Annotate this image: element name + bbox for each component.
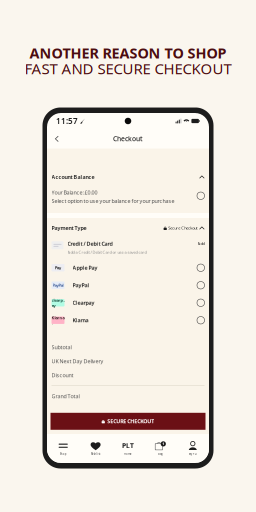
staticText: Subtotal bbox=[51, 344, 71, 351]
staticText: FAST AND SECURE CHECKOUT bbox=[24, 58, 231, 79]
staticText: Account Balance bbox=[51, 173, 94, 181]
staticText: 11:57 bbox=[56, 116, 78, 126]
staticText: PayPal bbox=[52, 283, 63, 288]
staticText: Wishlist bbox=[91, 452, 101, 456]
staticText: Bag bbox=[158, 452, 163, 456]
staticText: Select option to use your balance for yo… bbox=[51, 197, 174, 205]
staticText: Klarna bbox=[72, 317, 88, 324]
staticText: Checkout bbox=[113, 134, 143, 143]
button[interactable]: Pay bbox=[51, 259, 204, 276]
button[interactable]: 1 bbox=[144, 436, 177, 460]
staticText: clearpay bbox=[51, 297, 64, 308]
staticText: UK Next Day Delivery bbox=[51, 358, 103, 365]
button[interactable]: clearpay bbox=[51, 294, 204, 311]
staticText: Grand Total bbox=[51, 393, 79, 400]
staticText: Discount bbox=[51, 372, 73, 379]
staticText: Home bbox=[124, 452, 132, 456]
staticText: Add bbox=[197, 241, 204, 246]
button[interactable]: Klarna. bbox=[51, 311, 204, 329]
staticText: My PLT bbox=[189, 452, 197, 456]
button[interactable]: PayPal bbox=[51, 276, 204, 294]
button[interactable]: Shop bbox=[47, 436, 79, 460]
button[interactable]: SECURE CHECKOUT bbox=[50, 413, 205, 430]
staticText: Add a Credit / Debit Card or use a saved… bbox=[67, 250, 146, 255]
staticText: Clearpay bbox=[72, 299, 94, 306]
staticText: Pay bbox=[55, 265, 61, 270]
button[interactable]: Wishlist bbox=[79, 436, 112, 460]
staticText: SECURE CHECKOUT bbox=[107, 418, 154, 425]
button[interactable]: My PLT bbox=[177, 436, 209, 460]
button[interactable]: PLT bbox=[112, 436, 144, 460]
staticText: PayPal bbox=[72, 282, 89, 289]
staticText: Your Balance: £0.00 bbox=[51, 189, 97, 196]
staticText: PLT bbox=[122, 441, 134, 450]
staticText: Credit / Debit Card bbox=[67, 240, 112, 247]
button[interactable]: Back bbox=[51, 132, 62, 145]
staticText: 1 bbox=[162, 441, 164, 446]
staticText: ANOTHER REASON TO SHOP bbox=[29, 43, 226, 63]
staticText: Klarna. bbox=[51, 315, 64, 325]
staticText: Payment Type bbox=[51, 224, 86, 232]
button[interactable]: Credit / Debit Card bbox=[51, 239, 204, 255]
staticText: Secure Checkout bbox=[168, 225, 197, 231]
staticText: Shop bbox=[60, 452, 67, 456]
staticText: Apple Pay bbox=[72, 264, 97, 271]
button[interactable]: Account Balance bbox=[47, 148, 209, 213]
